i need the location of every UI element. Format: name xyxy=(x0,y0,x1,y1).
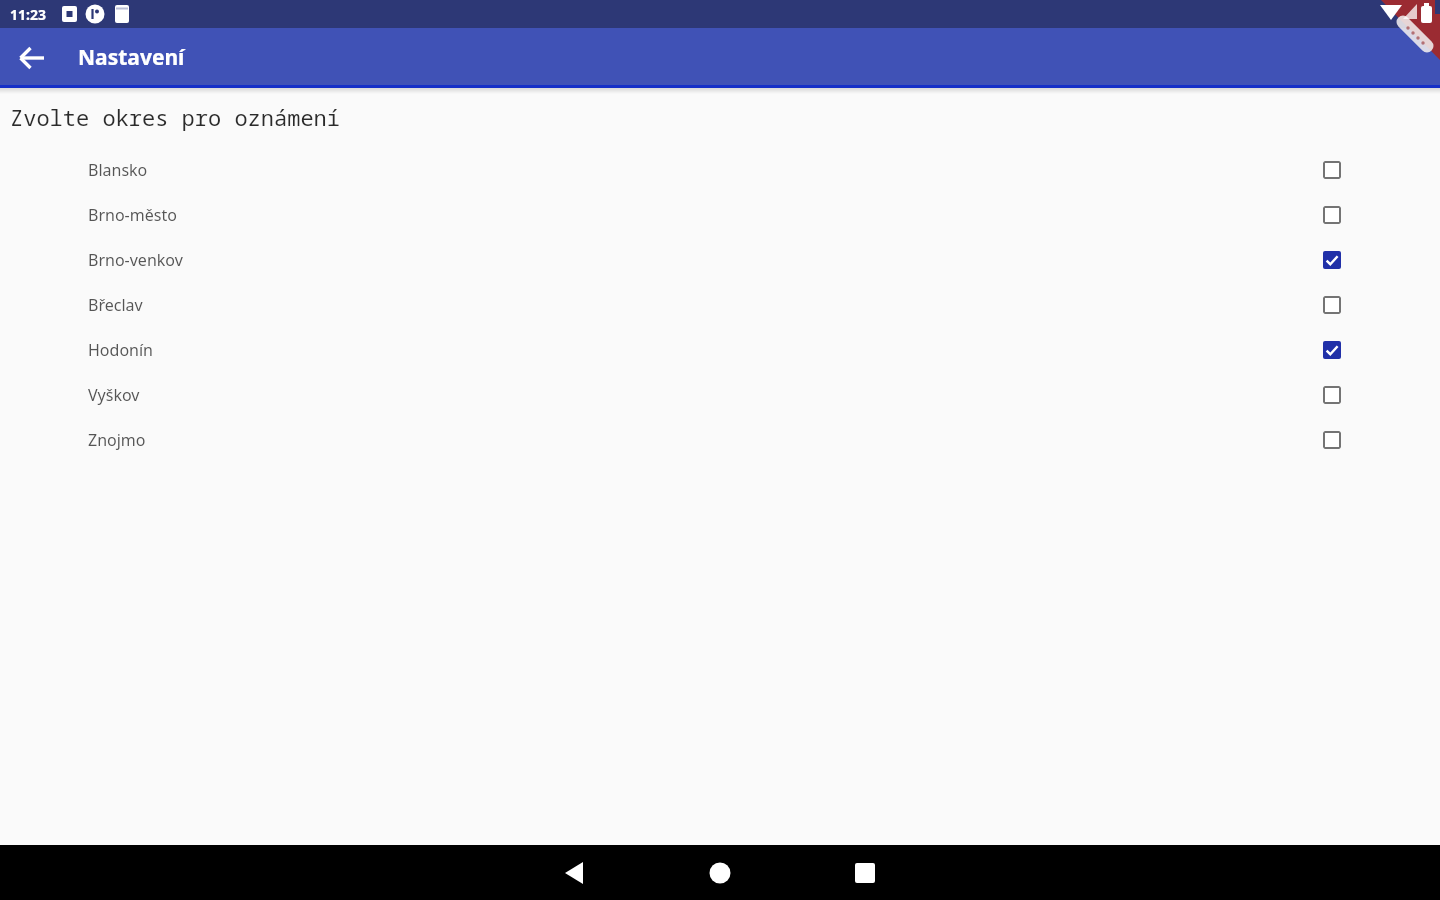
staticText: Brno-venkov xyxy=(88,249,183,271)
staticText: Hodonín xyxy=(88,339,153,361)
staticText: 11:23 xyxy=(10,5,46,24)
staticText: Zvolte okres pro oznámení xyxy=(10,102,341,132)
staticText: Znojmo xyxy=(88,429,146,451)
staticText: Vyškov xyxy=(88,384,140,406)
staticText: Břeclav xyxy=(88,294,143,316)
button[interactable]: Břeclav xyxy=(0,282,1440,327)
button[interactable]: Brno-město xyxy=(0,192,1440,237)
button[interactable] xyxy=(538,845,612,900)
button[interactable]: Hodonín xyxy=(0,327,1440,372)
staticText: Brno-město xyxy=(88,204,177,226)
button[interactable]: Znojmo xyxy=(0,417,1440,462)
button[interactable] xyxy=(828,845,902,900)
button[interactable]: Blansko xyxy=(0,147,1440,192)
staticText: Nastavení xyxy=(78,43,185,72)
button[interactable]: Vyškov xyxy=(0,372,1440,417)
staticText: Blansko xyxy=(88,159,148,181)
button[interactable]: Brno-venkov xyxy=(0,237,1440,282)
button[interactable] xyxy=(683,845,757,900)
button[interactable] xyxy=(13,38,53,78)
